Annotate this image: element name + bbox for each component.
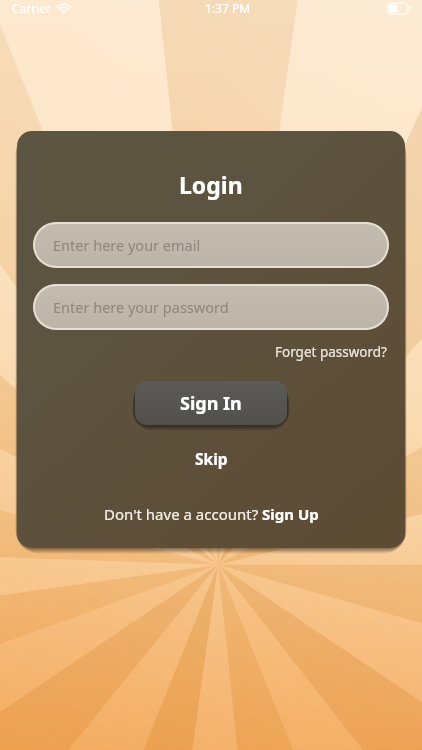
staticText: Sign In bbox=[180, 391, 242, 416]
button[interactable]: Enter here your password bbox=[33, 284, 389, 330]
staticText: Forget password? bbox=[275, 343, 387, 361]
staticText: Enter here your password bbox=[53, 297, 229, 317]
button[interactable]: Forget password? bbox=[273, 340, 389, 364]
button[interactable]: Enter here your email bbox=[33, 222, 389, 268]
staticText: Skip bbox=[195, 448, 228, 469]
staticText: Carrier bbox=[12, 0, 52, 16]
button[interactable]: Sign In bbox=[135, 381, 287, 425]
staticText: Enter here your email bbox=[53, 235, 201, 255]
button[interactable]: Skip bbox=[185, 445, 238, 472]
staticText: Login bbox=[179, 169, 243, 200]
button[interactable]: Don't have a account? Sign Up bbox=[98, 501, 325, 527]
staticText: 1:37 PM bbox=[205, 0, 251, 16]
staticText: Don't have a account? Sign Up bbox=[104, 504, 319, 524]
